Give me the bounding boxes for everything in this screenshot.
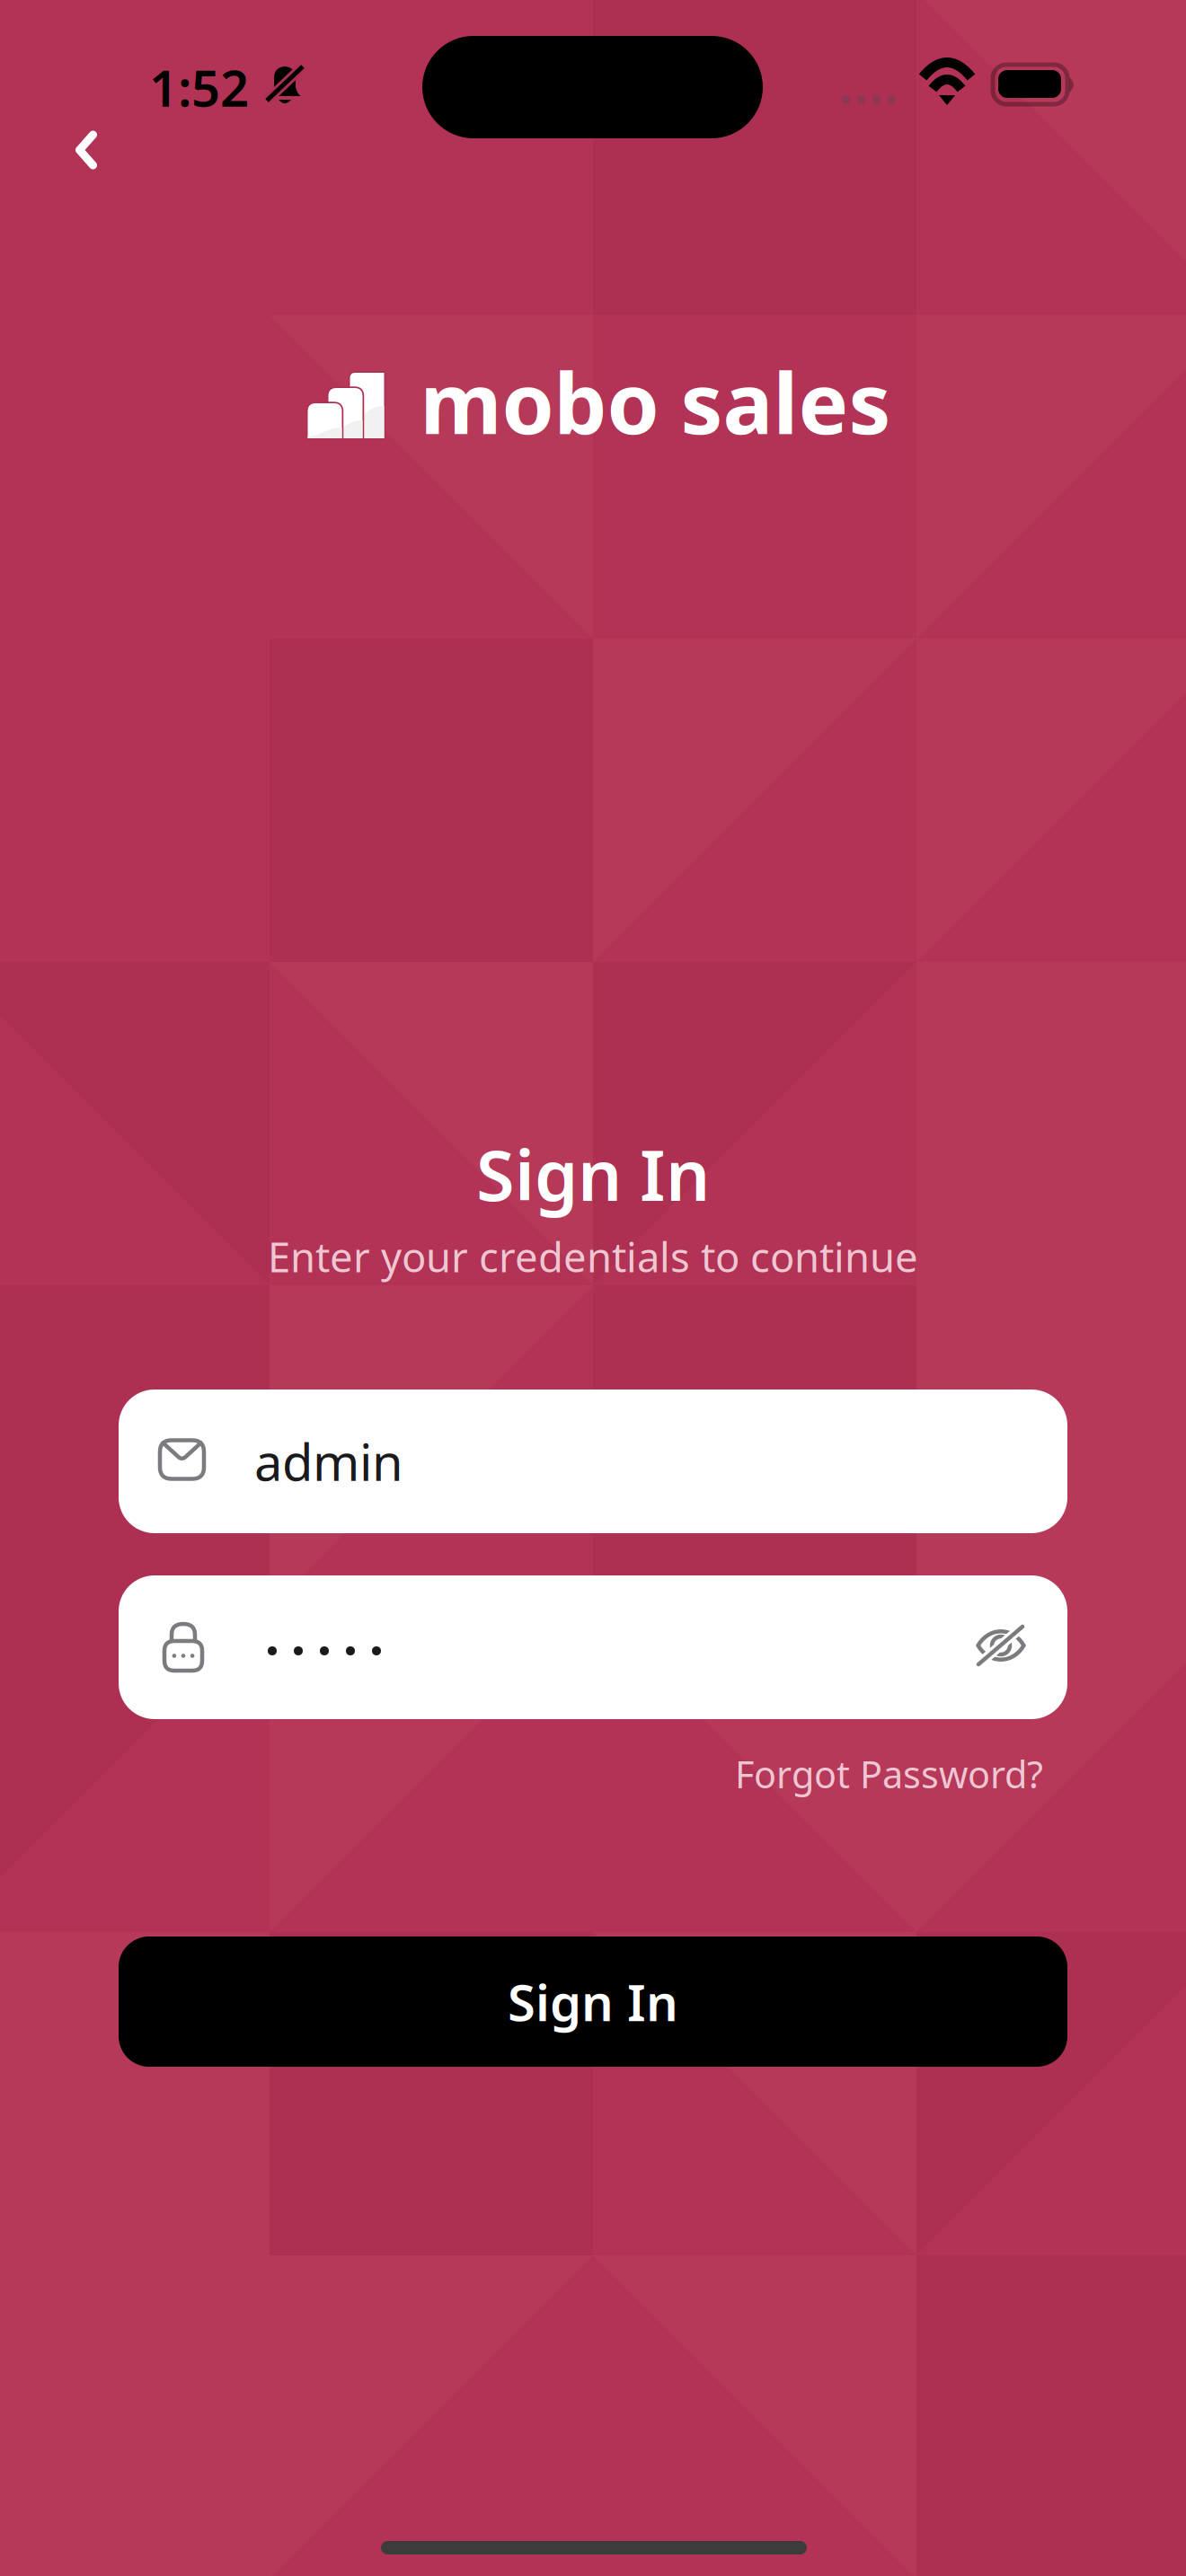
staticText: mobo sales (420, 346, 891, 457)
button[interactable]: Sign In (119, 1936, 1067, 2067)
staticText: Sign In (476, 1128, 710, 1220)
staticText: Enter your credentials to continue (268, 1230, 918, 1284)
staticText: Sign In (508, 1968, 678, 2035)
button[interactable]: admin (119, 1389, 1067, 1533)
button[interactable]: Back (43, 107, 129, 193)
staticText: admin (254, 1428, 403, 1495)
button[interactable] (119, 1575, 1067, 1719)
button[interactable]: Forgot Password? (666, 1746, 1043, 1802)
staticText: Forgot Password? (735, 1749, 1043, 1799)
staticText: 1:52 (149, 54, 249, 121)
